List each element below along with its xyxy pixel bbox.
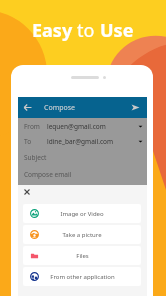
button[interactable]: Files (23, 246, 141, 265)
button[interactable]: From other application (23, 267, 141, 286)
staticText: Take a picture (62, 231, 102, 239)
staticText: Compose (44, 103, 76, 113)
staticText: Image or Video (60, 210, 104, 218)
button[interactable]: Back (23, 103, 32, 112)
staticText: Compose email (24, 170, 72, 179)
staticText: to (77, 18, 100, 43)
staticText: Subject (24, 153, 47, 162)
staticText: Use (100, 18, 134, 43)
staticText: To (24, 137, 32, 146)
staticText: lequen@gmail.com (47, 122, 106, 131)
button[interactable]: Image or Video (23, 204, 141, 223)
staticText: Easy (32, 18, 77, 43)
staticText: Files (76, 252, 89, 260)
staticText: ldine_bar@gmail.com (47, 137, 114, 146)
staticText: From other application (50, 273, 115, 281)
staticText: From (24, 122, 40, 131)
button[interactable]: Send (131, 103, 140, 112)
button[interactable]: Close (21, 186, 33, 198)
button[interactable]: Take a picture (23, 225, 141, 244)
